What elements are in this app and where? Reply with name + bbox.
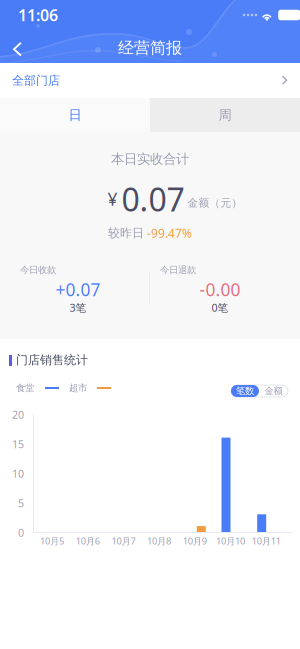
staticText: 今日收款 bbox=[20, 264, 56, 276]
staticText: 5 bbox=[18, 496, 24, 510]
staticText: 11:06 bbox=[18, 4, 58, 26]
staticText: -0.00 bbox=[199, 278, 240, 301]
button[interactable]: 日 bbox=[0, 98, 150, 132]
staticText: 本日实收合计 bbox=[111, 151, 189, 167]
staticText: 3笔 bbox=[69, 300, 86, 315]
staticText: 0.07 bbox=[121, 178, 184, 220]
staticText: 10月9 bbox=[183, 535, 207, 547]
staticText: ¥ bbox=[107, 187, 117, 210]
staticText: 金额（元） bbox=[187, 196, 242, 209]
staticText: 0 bbox=[18, 525, 24, 540]
button[interactable]: 笔数 bbox=[231, 385, 259, 397]
staticText: 10月7 bbox=[111, 535, 135, 547]
button[interactable]: 金额 bbox=[259, 385, 288, 397]
button[interactable]: 周 bbox=[150, 98, 300, 132]
staticText: +0.07 bbox=[55, 278, 100, 301]
staticText: 日 bbox=[68, 107, 81, 123]
staticText: 经营简报 bbox=[118, 38, 182, 58]
staticText: 10月10 bbox=[216, 535, 245, 547]
staticText: 超市 bbox=[69, 382, 87, 394]
staticText: 今日退款 bbox=[160, 264, 196, 276]
staticText: 较昨日 bbox=[108, 226, 144, 240]
staticText: 食堂 bbox=[16, 382, 34, 394]
button[interactable]: 全部门店 bbox=[0, 63, 300, 98]
staticText: 周 bbox=[218, 107, 231, 123]
staticText: -99.47% bbox=[147, 225, 192, 241]
staticText: 门店销售统计 bbox=[16, 353, 88, 367]
staticText: 15 bbox=[12, 437, 24, 451]
staticText: 全部门店 bbox=[12, 73, 60, 88]
staticText: 20 bbox=[12, 407, 24, 422]
button[interactable]: Back bbox=[12, 36, 42, 62]
staticText: 0笔 bbox=[211, 300, 228, 315]
staticText: 10月8 bbox=[147, 535, 171, 547]
staticText: 10月11 bbox=[252, 535, 281, 547]
staticText: 金额 bbox=[264, 385, 282, 397]
staticText: 笔数 bbox=[236, 385, 254, 397]
staticText: 10月6 bbox=[76, 535, 100, 547]
staticText: 10月5 bbox=[40, 535, 64, 547]
staticText: 10 bbox=[12, 466, 24, 481]
